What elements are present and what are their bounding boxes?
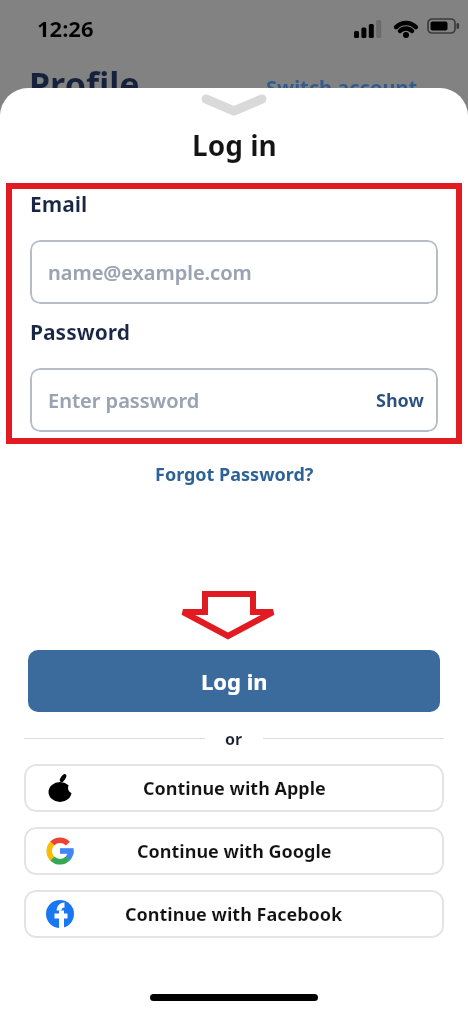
staticText: name@example.com	[48, 259, 252, 286]
button[interactable]: Continue with Facebook	[24, 890, 444, 938]
staticText: Show	[376, 388, 424, 413]
staticText: Continue with Facebook	[125, 902, 343, 927]
button[interactable]: Continue with Google	[24, 827, 444, 875]
staticText: or	[225, 728, 243, 750]
staticText: Email	[30, 190, 88, 219]
staticText: Profile	[29, 61, 140, 107]
staticText: Log in	[192, 126, 277, 164]
button[interactable]: name@example.com	[30, 240, 438, 304]
button[interactable]	[196, 88, 272, 122]
staticText: Switch account	[266, 74, 418, 101]
staticText: Password	[30, 318, 131, 347]
button[interactable]: Enter password	[30, 368, 438, 432]
staticText: Log in	[201, 666, 268, 696]
staticText: Forgot Password?	[155, 462, 314, 487]
button[interactable]: Log in	[28, 650, 440, 712]
staticText: 12:26	[37, 13, 94, 43]
button[interactable]: Show	[376, 388, 424, 413]
button[interactable]: Continue with Apple	[24, 764, 444, 812]
staticText: Continue with Apple	[143, 776, 326, 801]
staticText: Enter password	[48, 387, 200, 414]
staticText: Continue with Google	[137, 839, 332, 864]
button[interactable]: Forgot Password?	[155, 462, 314, 487]
